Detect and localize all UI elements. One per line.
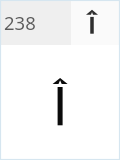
button[interactable]: Scroll to top xyxy=(71,0,120,45)
staticText: 238 xyxy=(4,10,36,35)
button[interactable]: 238 xyxy=(0,0,71,45)
